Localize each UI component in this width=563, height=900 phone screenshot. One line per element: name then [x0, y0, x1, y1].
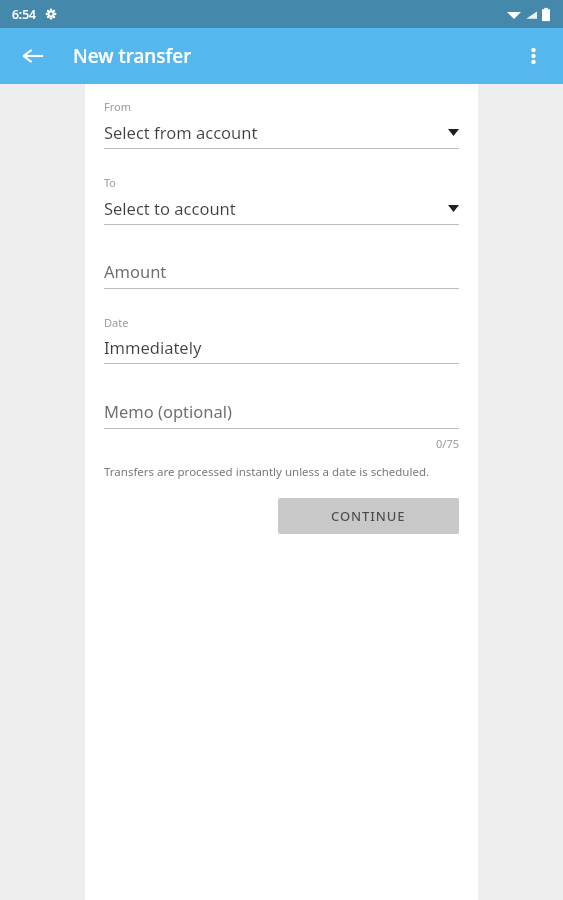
button[interactable]: Date — [104, 315, 459, 364]
button[interactable]: Amount — [104, 260, 459, 289]
staticText: 0/75 — [436, 436, 459, 451]
staticText: Memo (optional) — [104, 400, 232, 422]
button[interactable]: Navigate up — [10, 33, 56, 79]
staticText: Immediately — [104, 336, 202, 358]
staticText: CONTINUE — [331, 507, 406, 525]
staticText: 6:54 — [12, 6, 36, 22]
button[interactable]: From — [104, 99, 459, 149]
staticText: Select to account — [104, 197, 236, 219]
button[interactable]: More options — [510, 33, 556, 79]
button[interactable]: To — [104, 175, 459, 225]
button[interactable]: Memo (optional) — [104, 400, 459, 429]
staticText: Date — [104, 315, 129, 330]
staticText: New transfer — [73, 43, 192, 69]
staticText: Select from account — [104, 121, 258, 143]
staticText: From — [104, 99, 131, 114]
button[interactable]: CONTINUE — [278, 498, 459, 534]
staticText: To — [104, 175, 117, 190]
staticText: Transfers are processed instantly unless… — [104, 464, 430, 480]
staticText: Amount — [104, 260, 167, 282]
